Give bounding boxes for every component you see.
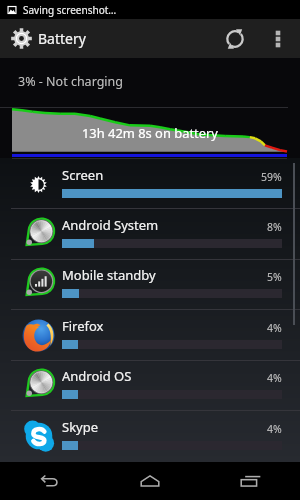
button[interactable]: Home [100,462,200,500]
staticText: 4% [267,371,282,385]
staticText: Android System [62,216,159,234]
button[interactable]: More options [260,21,296,57]
staticText: 5% [267,270,282,284]
button[interactable]: Screen [0,159,300,209]
button[interactable]: Firefox [0,310,300,360]
button[interactable]: Recent apps [200,462,300,500]
staticText: Firefox [62,317,104,335]
staticText: Battery [38,29,86,48]
button[interactable]: Back [0,462,100,500]
button[interactable]: Android OS [0,360,300,410]
staticText: 3% - Not charging [18,73,123,90]
staticText: Android OS [62,367,132,385]
button[interactable]: Mobile standby [0,259,300,309]
button[interactable]: Skype [0,411,300,461]
staticText: 4% [267,422,282,436]
staticText: 59% [261,170,282,184]
staticText: 8% [267,220,282,234]
staticText: 13h 42m 8s on battery [82,124,218,142]
button[interactable]: Android System [0,209,300,259]
button[interactable]: Refresh [217,21,253,57]
staticText: Skype [62,418,99,436]
staticText: 4% [267,321,282,335]
staticText: Saving screenshot… [23,3,117,17]
staticText: Mobile standby [62,266,156,284]
staticText: Screen [62,166,104,184]
